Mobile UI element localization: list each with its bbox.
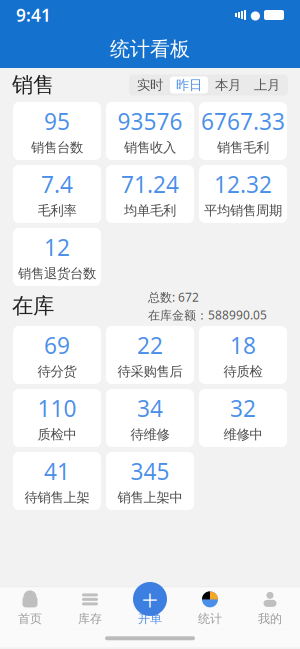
staticText: 销售毛利 bbox=[217, 139, 269, 156]
button[interactable]: 93576 bbox=[106, 102, 194, 160]
staticText: 待采购售后 bbox=[117, 363, 182, 380]
staticText: 维修中 bbox=[223, 426, 262, 443]
staticText: 平均销售周期 bbox=[204, 202, 282, 219]
staticText: 销售 bbox=[12, 72, 54, 98]
button[interactable]: 开单 bbox=[128, 577, 172, 621]
staticText: 质检中 bbox=[37, 426, 76, 443]
button[interactable]: 95 bbox=[13, 102, 101, 160]
staticText: 待维修 bbox=[130, 426, 169, 443]
staticText: 待分货 bbox=[37, 363, 76, 380]
staticText: 上月 bbox=[254, 77, 280, 93]
button[interactable]: 开单 bbox=[120, 587, 180, 629]
staticText: 22 bbox=[137, 330, 163, 360]
button[interactable]: 71.24 bbox=[106, 165, 194, 223]
button[interactable]: 昨日 bbox=[170, 76, 208, 93]
staticText: 12 bbox=[44, 232, 70, 262]
button[interactable]: 统计 bbox=[180, 587, 240, 629]
staticText: 销售上架中 bbox=[117, 489, 182, 506]
button[interactable]: 32 bbox=[199, 389, 287, 447]
staticText: 首页 bbox=[18, 611, 42, 626]
staticText: 我的 bbox=[258, 611, 282, 626]
staticText: 本月 bbox=[215, 77, 241, 93]
button[interactable]: 12 bbox=[13, 228, 101, 286]
staticText: 销售收入 bbox=[124, 139, 176, 156]
staticText: ● bbox=[250, 8, 260, 22]
button[interactable]: 6767.33 bbox=[199, 102, 287, 160]
staticText: 18 bbox=[230, 330, 256, 360]
staticText: 69 bbox=[44, 330, 70, 360]
staticText: 7.4 bbox=[41, 169, 73, 199]
staticText: 93576 bbox=[117, 106, 182, 136]
staticText: 32 bbox=[230, 393, 256, 423]
staticText: 销售台数 bbox=[31, 139, 83, 156]
button[interactable]: 库存 bbox=[60, 587, 120, 629]
button[interactable]: 110 bbox=[13, 389, 101, 447]
staticText: 总数: 672 bbox=[148, 289, 199, 305]
staticText: 统计 bbox=[198, 611, 222, 626]
staticText: 9:41 bbox=[16, 3, 51, 26]
staticText: 毛利率 bbox=[37, 202, 76, 219]
staticText: 实时 bbox=[137, 77, 163, 93]
staticText: 待销售上架 bbox=[24, 489, 89, 506]
staticText: 110 bbox=[37, 393, 76, 423]
staticText: 开单 bbox=[138, 611, 162, 626]
staticText: 销售退货台数 bbox=[18, 265, 96, 282]
staticText: 6767.33 bbox=[201, 106, 285, 136]
button[interactable]: 12.32 bbox=[199, 165, 287, 223]
button[interactable]: 345 bbox=[106, 452, 194, 510]
staticText: 昨日 bbox=[176, 77, 202, 93]
button[interactable]: 69 bbox=[13, 326, 101, 384]
button[interactable]: 实时 bbox=[131, 76, 169, 93]
button[interactable]: 22 bbox=[106, 326, 194, 384]
staticText: 库存 bbox=[78, 611, 102, 626]
button[interactable]: 34 bbox=[106, 389, 194, 447]
staticText: 12.32 bbox=[214, 169, 272, 199]
button[interactable]: 7.4 bbox=[13, 165, 101, 223]
staticText: 345 bbox=[130, 456, 169, 486]
staticText: 95 bbox=[44, 106, 70, 136]
button[interactable]: 41 bbox=[13, 452, 101, 510]
staticText: 34 bbox=[137, 393, 163, 423]
staticText: 待质检 bbox=[223, 363, 262, 380]
staticText: 在库 bbox=[12, 293, 54, 319]
staticText: 41 bbox=[44, 456, 70, 486]
staticText: 71.24 bbox=[121, 169, 179, 199]
button[interactable]: 首页 bbox=[0, 587, 60, 629]
staticText: 均单毛利 bbox=[124, 202, 176, 219]
staticText: 在库金额：588990.05 bbox=[148, 307, 267, 323]
button[interactable]: 上月 bbox=[248, 76, 286, 93]
button[interactable]: 我的 bbox=[240, 587, 300, 629]
staticText: 统计看板 bbox=[110, 37, 190, 61]
staticText: + bbox=[141, 579, 158, 618]
button[interactable]: 本月 bbox=[209, 76, 247, 93]
button[interactable]: 18 bbox=[199, 326, 287, 384]
